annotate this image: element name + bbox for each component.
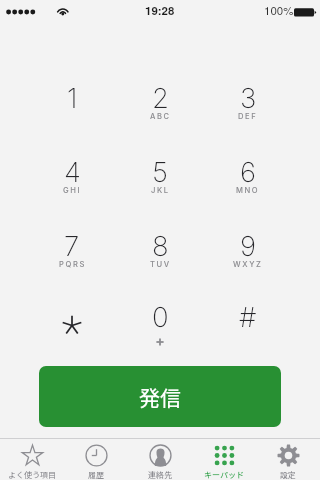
staticText: 1 (67, 81, 78, 114)
button[interactable]: 1 (32, 65, 112, 123)
button[interactable]: 3 (208, 65, 288, 123)
staticText: JKL (151, 186, 170, 195)
staticText: キーパッド (204, 469, 244, 480)
staticText: 0 (152, 300, 169, 333)
button[interactable]: キーパッド (192, 439, 256, 480)
button[interactable]: よく使う項目 (0, 439, 64, 480)
staticText: 8 (152, 229, 169, 262)
staticText: 2 (152, 81, 169, 114)
button[interactable]: 9 (208, 213, 288, 271)
staticText: # (239, 300, 257, 333)
staticText: 発信 (139, 382, 181, 412)
staticText: 6 (240, 155, 257, 188)
staticText: PQRS (59, 260, 86, 269)
staticText: 3 (240, 81, 257, 114)
staticText: ABC (150, 112, 171, 121)
button[interactable]: 2 (120, 65, 200, 123)
staticText: 設定 (280, 469, 296, 480)
staticText: GHI (63, 186, 82, 195)
button[interactable]: 連絡先 (128, 439, 192, 480)
staticText: 100% (264, 2, 294, 18)
staticText: 4 (64, 155, 81, 188)
staticText: 履歴 (88, 469, 104, 480)
button[interactable]: 8 (120, 213, 200, 271)
staticText: TUV (150, 260, 171, 269)
staticText: DEF (238, 112, 258, 121)
staticText: 連絡先 (148, 469, 172, 480)
button[interactable]: 発信 (39, 366, 281, 427)
button[interactable] (32, 284, 112, 342)
button[interactable]: 6 (208, 139, 288, 197)
button[interactable]: 履歴 (64, 439, 128, 480)
button[interactable]: # (208, 284, 288, 342)
staticText: 19:28 (145, 2, 175, 18)
staticText: 9 (240, 229, 257, 262)
button[interactable]: 4 (32, 139, 112, 197)
button[interactable]: 0 (120, 284, 200, 342)
staticText: MNO (236, 186, 260, 195)
button[interactable]: 5 (120, 139, 200, 197)
button[interactable]: 7 (32, 213, 112, 271)
staticText: よく使う項目 (8, 469, 56, 480)
button[interactable]: 設定 (256, 439, 320, 480)
staticText: WXYZ (233, 260, 263, 269)
staticText: 7 (64, 229, 80, 262)
staticText: 5 (152, 155, 168, 188)
